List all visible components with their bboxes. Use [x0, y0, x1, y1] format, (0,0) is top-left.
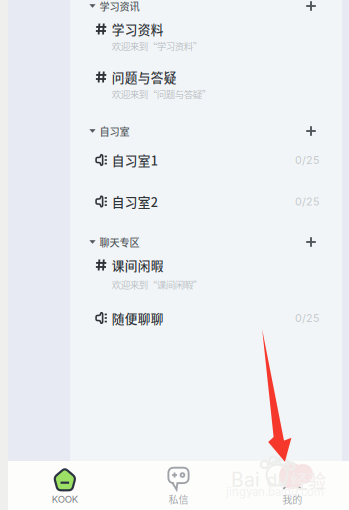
- staticText: 随便聊聊: [112, 309, 164, 327]
- staticText: Bai: [231, 468, 260, 491]
- button[interactable]: 自习室2: [70, 182, 342, 221]
- button[interactable]: 私信: [122, 461, 235, 510]
- staticText: 欢迎来到“课间闲暇”: [112, 277, 202, 291]
- staticText: 自习室2: [112, 192, 158, 211]
- button[interactable]: 自习室1: [70, 141, 342, 182]
- button[interactable]: 新建频道: [300, 0, 322, 17]
- button[interactable]: 我的: [235, 461, 349, 510]
- staticText: 私信: [168, 492, 188, 506]
- staticText: jingyan.baidu.com: [226, 485, 324, 499]
- staticText: 欢迎来到“学习资料”: [112, 39, 202, 53]
- staticText: 自习室: [100, 124, 130, 138]
- staticText: 经验: [290, 467, 326, 493]
- staticText: 0/25: [295, 195, 319, 208]
- staticText: 欢迎来到“问题与答疑”: [112, 87, 211, 101]
- button[interactable]: 随便聊聊: [70, 300, 342, 340]
- staticText: 自习室1: [112, 151, 158, 169]
- button[interactable]: 问题与答疑: [70, 64, 342, 112]
- staticText: 0/25: [295, 153, 319, 166]
- staticText: 学习资讯: [100, 0, 140, 13]
- staticText: KOOK: [52, 493, 78, 505]
- button[interactable]: 新建频道: [300, 231, 322, 253]
- button[interactable]: 新建频道: [300, 120, 322, 142]
- button[interactable]: KOOK: [8, 461, 122, 510]
- staticText: 课间闲暇: [112, 256, 164, 274]
- button[interactable]: 学习资料: [70, 16, 342, 64]
- staticText: 0/25: [295, 311, 319, 324]
- staticText: 问题与答疑: [112, 68, 177, 86]
- staticText: 学习资料: [112, 20, 164, 38]
- staticText: 我的: [282, 492, 302, 506]
- button[interactable]: 课间闲暇: [70, 252, 342, 300]
- staticText: 聊天专区: [100, 235, 140, 249]
- staticText: du: [266, 470, 287, 491]
